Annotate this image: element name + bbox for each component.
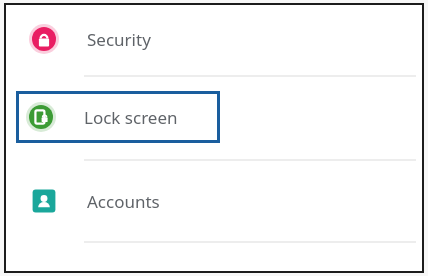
staticText: Security — [87, 28, 151, 51]
other: Accounts — [29, 186, 59, 216]
button[interactable]: Lock screen — [16, 91, 220, 143]
button[interactable]: Security — [4, 3, 424, 75]
staticText: Lock screen — [84, 106, 178, 129]
other: Lock screen — [26, 102, 56, 132]
other: Security — [29, 24, 59, 54]
button[interactable]: Accounts — [4, 161, 424, 241]
staticText: Accounts — [87, 190, 160, 213]
